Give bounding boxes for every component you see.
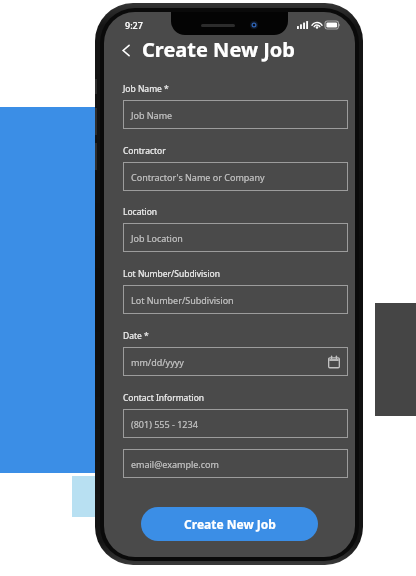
staticText: Job Name * (123, 83, 169, 95)
staticText: Contractor's Name or Company (131, 171, 265, 183)
staticText: Location (123, 206, 158, 218)
button[interactable]: Job Location (123, 223, 348, 252)
staticText: Contractor (123, 145, 166, 157)
staticText: Create New Job (142, 36, 295, 63)
staticText: email@example.com (131, 458, 219, 470)
button[interactable]: mm/dd/yyyy (123, 347, 348, 376)
staticText: Lot Number/Subdivision (131, 294, 234, 306)
button[interactable]: Contractor's Name or Company (123, 162, 348, 191)
staticText: mm/dd/yyyy (131, 356, 184, 368)
button[interactable]: Back (117, 41, 135, 59)
button[interactable]: Job Name (123, 100, 348, 129)
button[interactable]: Create New Job (141, 507, 318, 541)
staticText: Job Name (131, 109, 173, 121)
button[interactable]: Pick date (327, 355, 340, 368)
staticText: 9:27 (125, 19, 143, 31)
staticText: Contact Information (123, 392, 205, 404)
staticText: Job Location (131, 232, 183, 244)
button[interactable]: email@example.com (123, 449, 348, 478)
staticText: Create New Job (184, 516, 276, 532)
button[interactable]: Lot Number/Subdivision (123, 285, 348, 314)
button[interactable]: (801) 555 - 1234 (123, 409, 348, 438)
staticText: Lot Number/Subdivision (123, 268, 220, 280)
staticText: Date * (123, 330, 149, 342)
staticText: (801) 555 - 1234 (131, 418, 198, 430)
